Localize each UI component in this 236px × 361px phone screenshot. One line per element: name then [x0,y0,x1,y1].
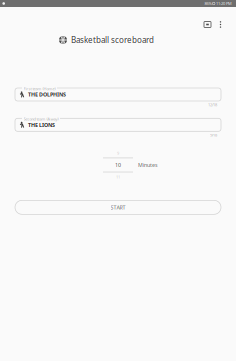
button[interactable]: 11 minutes [103,172,133,181]
button[interactable]: 9 minutes [103,149,133,158]
button[interactable]: More options [214,18,227,31]
staticText: 10 [115,161,121,168]
staticText: Second team (Away) [23,116,58,122]
staticText: 9/18 [210,132,217,138]
button[interactable]: START [15,200,221,214]
staticText: THE LIONS [28,121,55,128]
staticText: 11 [116,174,120,179]
staticText: 9 [117,150,119,156]
staticText: START [110,204,125,211]
staticText: 12/18 [208,102,217,107]
button[interactable]: 10 minutes, selected [103,158,133,172]
staticText: THE DOLPHINS [28,91,66,98]
staticText: Basketball scoreboard [71,35,154,45]
staticText: First team (Home) [23,86,55,91]
button[interactable]: Scoreboard history [201,18,214,31]
staticText: 11:20 PM [216,1,232,6]
staticText: Minutes [138,161,158,168]
staticText: 86% [204,1,211,6]
